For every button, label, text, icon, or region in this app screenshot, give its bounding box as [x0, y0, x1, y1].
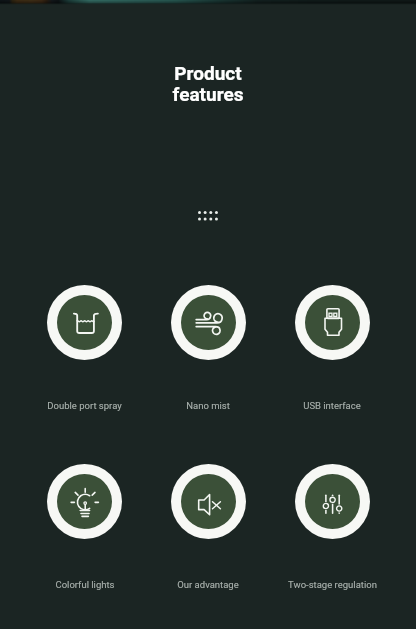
button[interactable]: Two-stage regulation: [270, 464, 394, 590]
staticText: Colorful lights: [55, 579, 115, 590]
staticText: Two-stage regulation: [288, 579, 377, 590]
button[interactable]: Colorful lights: [23, 464, 146, 590]
staticText: USB interface: [303, 400, 361, 411]
staticText: Double port spray: [47, 400, 122, 411]
button[interactable]: Nano mist: [146, 285, 270, 411]
staticText: Our advantage: [177, 579, 239, 590]
staticText: Nano mist: [186, 400, 230, 411]
button[interactable]: Double port spray: [23, 285, 146, 411]
button[interactable]: Our advantage: [146, 464, 270, 590]
button[interactable]: USB interface: [270, 285, 394, 411]
staticText: Product features: [0, 62, 416, 106]
